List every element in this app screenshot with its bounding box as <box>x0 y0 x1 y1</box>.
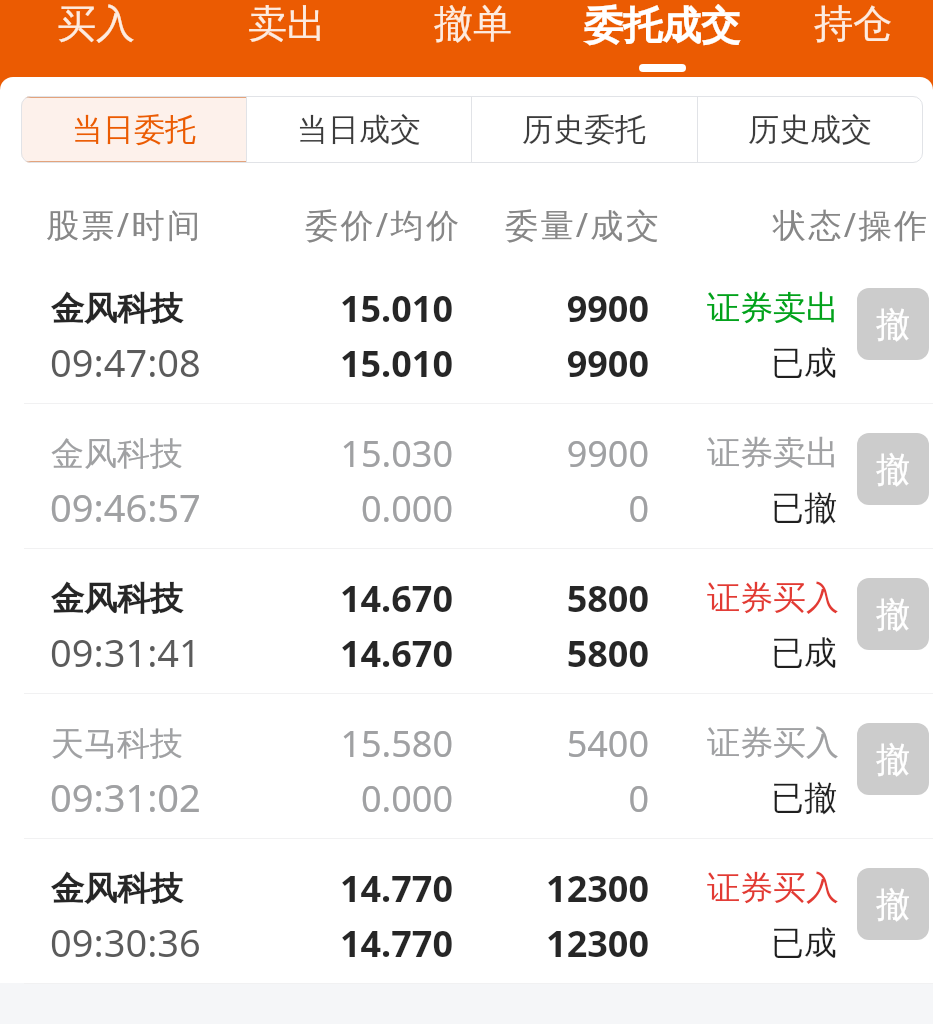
staticText: 5800 <box>449 574 649 623</box>
staticText: 撤 <box>876 883 910 926</box>
staticText: 撤 <box>876 448 910 491</box>
button[interactable]: 撤单 <box>398 0 548 77</box>
staticText: 金风科技 <box>51 868 183 910</box>
staticText: 14.670 <box>253 629 453 678</box>
staticText: 09:31:41 <box>50 626 201 678</box>
staticText: 14.670 <box>253 574 453 623</box>
staticText: 委托成交 <box>584 1 740 50</box>
staticText: 15.580 <box>253 719 453 768</box>
staticText: 已撤 <box>637 487 837 529</box>
staticText: 证券卖出 <box>639 432 839 474</box>
staticText: 状态/操作 <box>773 202 930 247</box>
button[interactable]: 金风科技 <box>0 839 933 984</box>
staticText: 12300 <box>449 919 649 968</box>
staticText: 0 <box>449 774 649 823</box>
staticText: 09:46:57 <box>50 481 201 533</box>
staticText: 9900 <box>449 429 649 478</box>
staticText: 金风科技 <box>51 578 183 620</box>
staticText: 已撤 <box>637 777 837 819</box>
button[interactable]: 撤单 <box>857 578 929 650</box>
button[interactable]: 历史成交 <box>697 96 923 163</box>
button[interactable]: 委托成交 <box>557 0 767 77</box>
button[interactable]: 持仓 <box>778 0 928 77</box>
button[interactable]: 撤单 <box>857 433 929 505</box>
staticText: 15.010 <box>253 284 453 333</box>
staticText: 撤 <box>876 593 910 636</box>
staticText: 已成 <box>637 922 837 964</box>
button[interactable]: 金风科技 <box>0 259 933 404</box>
button[interactable]: 撤单 <box>857 868 929 940</box>
staticText: 5800 <box>449 629 649 678</box>
button[interactable]: 金风科技 <box>0 549 933 694</box>
staticText: 当日成交 <box>297 110 421 149</box>
staticText: 委量/成交 <box>505 202 662 247</box>
staticText: 证券买入 <box>639 577 839 619</box>
staticText: 12300 <box>449 864 649 913</box>
button[interactable]: 天马科技 <box>0 694 933 839</box>
staticText: 14.770 <box>253 864 453 913</box>
staticText: 0.000 <box>253 484 453 533</box>
staticText: 0.000 <box>253 774 453 823</box>
staticText: 撤 <box>876 303 910 346</box>
staticText: 0 <box>449 484 649 533</box>
staticText: 历史委托 <box>522 110 646 149</box>
staticText: 撤单 <box>434 0 512 48</box>
staticText: 14.770 <box>253 919 453 968</box>
button[interactable]: 卖出 <box>212 0 362 77</box>
button[interactable]: 撤单 <box>857 288 929 360</box>
button[interactable]: 当日成交 <box>246 96 471 163</box>
staticText: 证券卖出 <box>639 287 839 329</box>
staticText: 持仓 <box>814 0 892 48</box>
staticText: 金风科技 <box>51 433 183 475</box>
staticText: 5400 <box>449 719 649 768</box>
staticText: 已成 <box>637 632 837 674</box>
staticText: 买入 <box>57 0 135 48</box>
staticText: 卖出 <box>248 0 326 48</box>
staticText: 证券买入 <box>639 722 839 764</box>
staticText: 15.030 <box>253 429 453 478</box>
staticText: 金风科技 <box>51 288 183 330</box>
staticText: 15.010 <box>253 339 453 388</box>
staticText: 股票/时间 <box>46 202 203 247</box>
button[interactable]: 当日委托 <box>21 96 246 163</box>
staticText: 09:31:02 <box>50 771 201 823</box>
staticText: 09:47:08 <box>50 336 201 388</box>
staticText: 9900 <box>449 339 649 388</box>
staticText: 09:30:36 <box>50 916 201 968</box>
staticText: 已成 <box>637 342 837 384</box>
button[interactable]: 买入 <box>21 0 171 77</box>
button[interactable]: 撤单 <box>857 723 929 795</box>
button[interactable]: 金风科技 <box>0 404 933 549</box>
button[interactable]: 历史委托 <box>471 96 697 163</box>
staticText: 委价/均价 <box>305 202 462 247</box>
staticText: 当日委托 <box>72 110 196 149</box>
staticText: 历史成交 <box>748 110 872 149</box>
staticText: 证券买入 <box>639 867 839 909</box>
staticText: 撤 <box>876 738 910 781</box>
staticText: 天马科技 <box>51 723 183 765</box>
staticText: 9900 <box>449 284 649 333</box>
